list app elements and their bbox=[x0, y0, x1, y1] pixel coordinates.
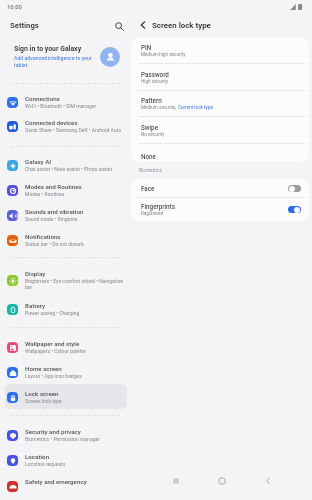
button[interactable]: Modes and Routines bbox=[5, 177, 127, 202]
button[interactable]: Pattern bbox=[131, 90, 309, 116]
staticText: Home screen bbox=[25, 365, 62, 372]
staticText: Registered bbox=[141, 211, 164, 216]
staticText: Wallpaper and style bbox=[25, 340, 80, 347]
button[interactable]: Sign in to your Galaxy bbox=[14, 45, 96, 68]
button[interactable]: Swipe bbox=[131, 117, 309, 143]
staticText: Wi-Fi • Bluetooth • SIM manager bbox=[25, 103, 97, 109]
staticText: Security and privacy bbox=[25, 428, 81, 435]
staticText: Status bar • Do not disturb bbox=[25, 241, 84, 247]
button[interactable]: Galaxy AI bbox=[5, 152, 127, 177]
staticText: Sounds and vibration bbox=[25, 208, 84, 215]
staticText: Power saving • Charging bbox=[25, 310, 80, 316]
staticText: Chat assist • Note assist • Photo assist bbox=[25, 166, 113, 172]
staticText: Modes and Routines bbox=[25, 183, 82, 190]
button[interactable] bbox=[100, 47, 120, 67]
button[interactable]: Connections bbox=[5, 89, 127, 114]
button[interactable]: Home screen bbox=[5, 359, 127, 384]
staticText: Location requests bbox=[25, 461, 66, 467]
staticText: PIN bbox=[141, 44, 152, 51]
staticText: Connected devices bbox=[25, 119, 78, 126]
staticText: Location bbox=[25, 453, 50, 460]
staticText: Quick Share • Samsung DeX • Android Auto bbox=[25, 127, 122, 133]
staticText: 10:00 bbox=[7, 4, 22, 11]
button[interactable]: Back bbox=[258, 471, 278, 491]
staticText: Layout • App icon badges bbox=[25, 373, 82, 379]
staticText: Face bbox=[141, 185, 155, 192]
staticText: Biometrics • Permission manager bbox=[25, 436, 100, 442]
button[interactable]: Fingerprints bbox=[131, 198, 309, 221]
staticText: bar bbox=[25, 284, 33, 290]
staticText: Biometrics bbox=[139, 168, 162, 174]
staticText: Modes • Routines bbox=[25, 191, 65, 197]
button[interactable]: Notifications bbox=[5, 227, 127, 252]
staticText: Pattern bbox=[141, 97, 162, 104]
staticText: Fingerprints bbox=[141, 203, 175, 210]
staticText: Password bbox=[141, 71, 169, 78]
button[interactable]: Home bbox=[212, 471, 232, 491]
button[interactable]: Battery bbox=[5, 296, 127, 321]
staticText: Settings bbox=[10, 21, 39, 30]
staticText: Screen lock type bbox=[152, 21, 211, 30]
button[interactable]: Location bbox=[5, 447, 127, 472]
button[interactable]: None bbox=[131, 143, 309, 162]
button[interactable]: Wallpaper and style bbox=[5, 334, 127, 359]
staticText: Medium-high security bbox=[141, 52, 186, 57]
button[interactable]: Recents bbox=[166, 471, 186, 491]
staticText: Battery bbox=[25, 302, 45, 309]
staticText: Notifications bbox=[25, 233, 61, 240]
staticText: None bbox=[141, 153, 156, 160]
button[interactable]: PIN bbox=[131, 37, 309, 63]
staticText: Swipe bbox=[141, 124, 159, 131]
button[interactable]: Security and privacy bbox=[5, 422, 127, 447]
staticText: High security bbox=[141, 79, 169, 84]
staticText: Wallpapers • Colour palette bbox=[25, 348, 86, 354]
staticText: No security bbox=[141, 132, 165, 137]
button[interactable]: Search bbox=[111, 18, 127, 34]
staticText: Safety and emergency bbox=[25, 478, 87, 485]
staticText: Display bbox=[25, 270, 46, 277]
staticText: Galaxy AI bbox=[25, 158, 52, 165]
staticText: Connections bbox=[25, 95, 60, 102]
button[interactable]: Connected devices bbox=[5, 113, 127, 138]
staticText: Brightness • Eye comfort shield • Naviga… bbox=[25, 278, 124, 284]
staticText: Sign in to your Galaxy bbox=[14, 45, 82, 53]
staticText: Screen lock type bbox=[25, 398, 62, 404]
button[interactable]: Sounds and vibration bbox=[5, 202, 127, 227]
staticText: Lock screen bbox=[25, 390, 59, 397]
staticText: Current lock type bbox=[178, 105, 213, 110]
staticText: Sound mode • Ringtone bbox=[25, 216, 78, 222]
button[interactable]: Back bbox=[136, 18, 149, 31]
button[interactable]: Safety and emergency bbox=[5, 472, 127, 497]
button[interactable]: Lock screen bbox=[5, 384, 127, 409]
button[interactable]: Face bbox=[131, 179, 309, 197]
staticText: Add advanced intelligence to your tablet… bbox=[14, 55, 96, 68]
button[interactable]: Password bbox=[131, 64, 309, 90]
button[interactable]: Display bbox=[5, 264, 127, 294]
staticText: Medium security, bbox=[141, 105, 178, 110]
